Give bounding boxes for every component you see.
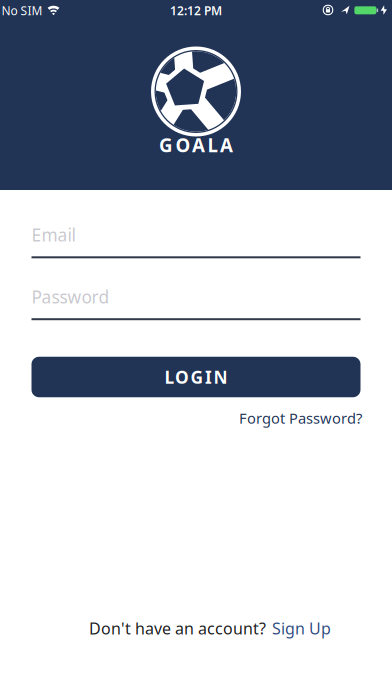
- staticText: No SIM: [1, 2, 42, 18]
- button[interactable]: Sign Up: [272, 618, 331, 639]
- button[interactable]: Password: [31, 285, 360, 320]
- staticText: Don't have an account?: [89, 618, 266, 639]
- button[interactable]: LOGIN: [31, 357, 360, 397]
- staticText: 12:12 PM: [170, 2, 222, 18]
- button[interactable]: Forgot Password?: [239, 408, 362, 428]
- staticText: Forgot Password?: [239, 408, 362, 428]
- staticText: LOGIN: [164, 365, 227, 388]
- button[interactable]: Email: [31, 223, 360, 258]
- staticText: Password: [31, 285, 109, 308]
- staticText: Email: [31, 223, 75, 246]
- staticText: GOALA: [159, 133, 233, 157]
- staticText: Sign Up: [272, 618, 331, 639]
